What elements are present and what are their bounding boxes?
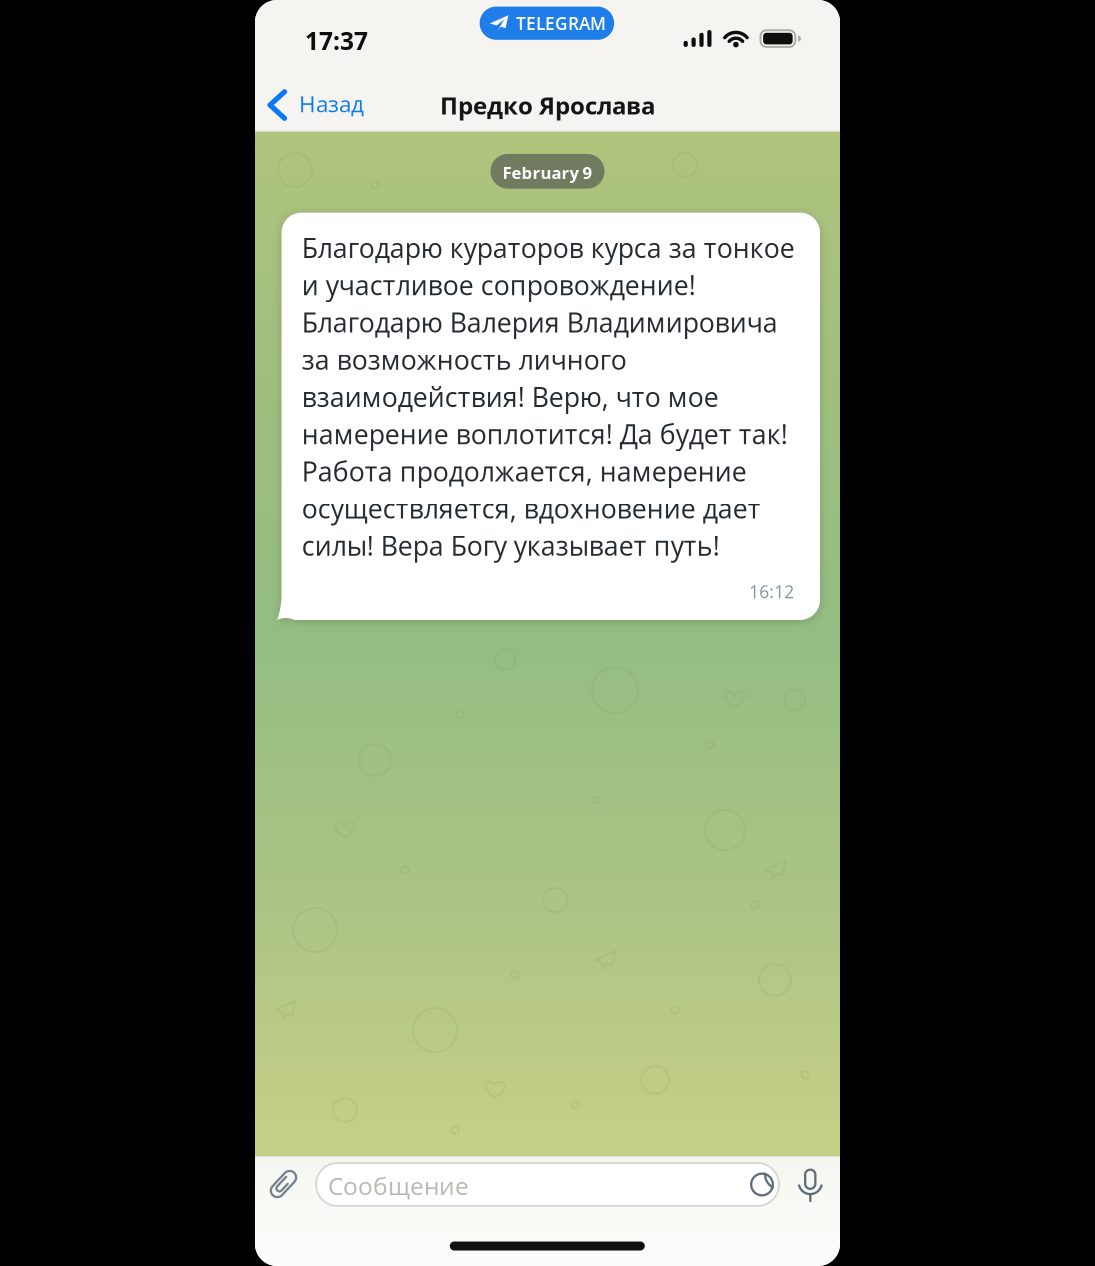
button[interactable]: TELEGRAM bbox=[480, 7, 614, 40]
button[interactable]: Назад bbox=[255, 0, 375, 132]
staticText: 16:12 bbox=[749, 580, 794, 603]
staticText: Благодарю кураторов курса за тонкое и уч… bbox=[302, 229, 795, 564]
staticText: February 9 bbox=[502, 161, 592, 184]
staticText: 17:37 bbox=[305, 24, 368, 57]
button[interactable]: Сообщение bbox=[315, 1162, 780, 1207]
button[interactable]: Record voice message bbox=[793, 1165, 827, 1205]
staticText: Предко Ярослава bbox=[440, 89, 655, 122]
staticText: TELEGRAM bbox=[516, 11, 606, 35]
staticText: Сообщение bbox=[328, 1169, 469, 1202]
button[interactable]: Attach bbox=[263, 1164, 303, 1204]
staticText: Назад bbox=[299, 88, 364, 119]
